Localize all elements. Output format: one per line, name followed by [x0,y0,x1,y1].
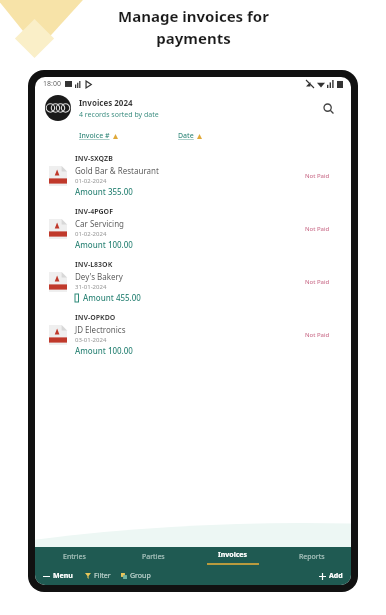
button[interactable]: Not Paid [298,275,337,289]
staticText: Not Paid [305,278,330,286]
staticText: 03-01-2024 [75,336,107,344]
button[interactable]: INV-OPKDO [43,309,343,360]
staticText: 4 records sorted by date [79,110,159,120]
button[interactable]: Reports [272,547,351,567]
staticText: Not Paid [305,172,330,180]
staticText: INV-L83OK [75,260,113,270]
button[interactable]: Date [178,129,202,143]
button[interactable]: Not Paid [298,222,337,236]
staticText: Invoices 2024 [79,97,133,108]
staticText: Dey's Bakery [75,271,123,282]
staticText: Amount 455.00 [83,292,141,303]
staticText: payments [156,28,231,48]
staticText: Menu [53,571,73,581]
button[interactable]: Invoice # [79,129,118,143]
staticText: Not Paid [305,225,330,233]
staticText: Car Servicing [75,218,125,229]
staticText: JD Electronics [75,324,126,335]
button[interactable]: Not Paid [298,169,337,183]
button[interactable]: INV-4PGOF [43,203,343,254]
staticText: Amount 100.00 [75,239,133,250]
button[interactable]: Menu [43,571,73,581]
button[interactable]: Parties [114,547,193,567]
staticText: Gold Bar & Restaurant [75,165,159,176]
button[interactable]: Invoices [193,547,272,567]
staticText: Amount 355.00 [75,186,133,197]
button[interactable]: Group [121,571,151,581]
staticText: Invoices [218,550,248,560]
button[interactable]: Filter [85,571,111,581]
staticText: INV-4PGOF [75,207,114,217]
staticText: INV-SXQZB [75,154,113,164]
button[interactable]: INV-L83OK [43,256,343,307]
button[interactable]: Entries [35,547,114,567]
staticText: Group [130,571,151,581]
staticText: Parties [142,552,165,562]
button[interactable]: Not Paid [298,328,337,342]
staticText: 18:00 [43,79,61,89]
staticText: 31-01-2024 [75,283,107,291]
staticText: Reports [299,552,325,562]
staticText: Add [329,571,343,581]
staticText: 01-02-2024 [75,177,107,185]
button[interactable]: Add [319,571,343,581]
staticText: Manage invoices for [118,6,269,26]
staticText: Amount 100.00 [75,345,133,356]
staticText: Entries [63,552,86,562]
staticText: INV-OPKDO [75,313,116,323]
staticText: Invoice # [79,131,110,141]
staticText: Filter [94,571,111,581]
staticText: 01-02-2024 [75,230,107,238]
staticText: Not Paid [305,331,330,339]
staticText: Date [178,131,194,141]
button[interactable]: INV-SXQZB [43,150,343,201]
button[interactable]: Search [315,95,341,121]
